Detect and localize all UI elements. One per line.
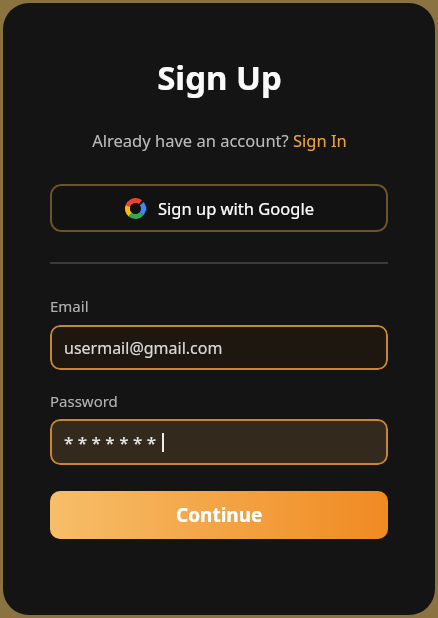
button[interactable]: usermail@gmail.com [50,325,388,370]
button[interactable]: * * * * * * * [50,419,388,465]
staticText: usermail@gmail.com [64,337,223,359]
staticText: Password [50,391,118,411]
button[interactable]: Continue [50,491,388,539]
staticText: Continue [176,502,263,528]
staticText: * * * * * * * [64,431,157,454]
button[interactable]: Sign up with Google [50,184,388,232]
button[interactable]: Already have an account? Sign In [92,129,347,151]
staticText: Sign Up [157,55,282,100]
staticText: Already have an account? Sign In [92,129,347,151]
staticText: Email [50,296,89,316]
staticText: Sign up with Google [158,197,314,219]
